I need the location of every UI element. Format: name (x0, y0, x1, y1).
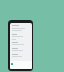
button[interactable]: Add (11, 63, 13, 65)
